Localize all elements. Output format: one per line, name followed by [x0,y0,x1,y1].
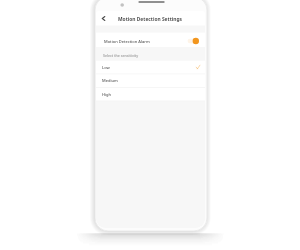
staticText: Select the sensitivity [103,53,139,58]
staticText: Medium [102,78,118,83]
button[interactable]: High [96,88,205,102]
staticText: High [102,92,112,97]
staticText: Motion Detection Alarm [104,39,150,44]
button[interactable]: Low [96,61,205,75]
button[interactable]: Medium [96,74,205,88]
staticText: Motion Detection Settings [118,16,182,23]
staticText: Low [102,65,110,70]
button[interactable]: Motion Detection Alarm toggle [187,37,199,45]
button[interactable]: Back [98,13,109,24]
button[interactable]: Motion Detection Alarm [96,33,205,47]
